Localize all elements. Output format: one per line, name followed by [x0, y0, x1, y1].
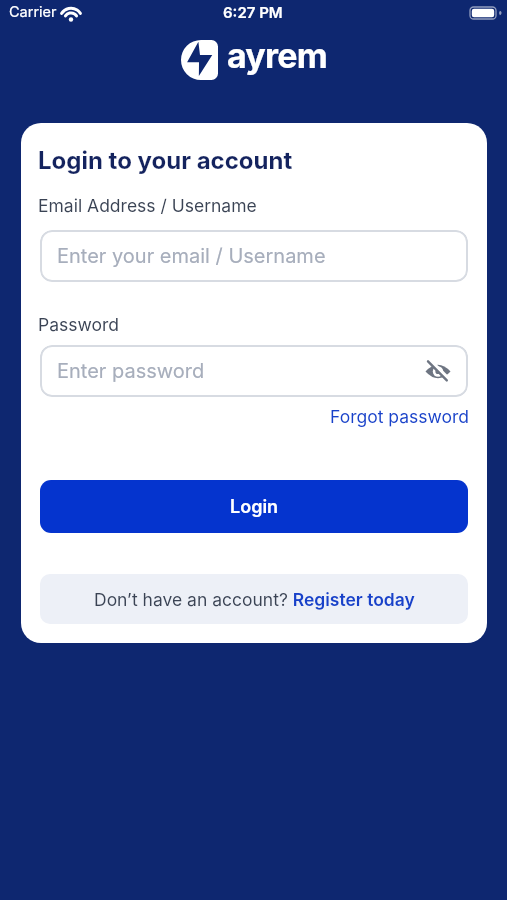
staticText: Login to your account	[38, 146, 293, 175]
button[interactable]: Don’t have an account? Register today	[40, 574, 468, 624]
staticText: Carrier	[9, 3, 57, 21]
staticText: Enter password	[57, 359, 205, 383]
staticText: Password	[38, 314, 119, 335]
staticText: Enter your email / Username	[57, 244, 326, 268]
button[interactable]: Login	[40, 480, 468, 533]
staticText: Don’t have an account? Register today	[94, 589, 415, 610]
button[interactable]: Enter your email / Username	[40, 230, 468, 282]
staticText: Email Address / Username	[38, 195, 257, 216]
staticText: Forgot password	[330, 406, 470, 427]
button[interactable]: Forgot password	[330, 406, 470, 427]
staticText: ayrem	[227, 35, 327, 76]
staticText: 6:27 PM	[223, 3, 283, 21]
button[interactable]: Enter password	[40, 345, 468, 397]
staticText: Login	[230, 496, 279, 518]
